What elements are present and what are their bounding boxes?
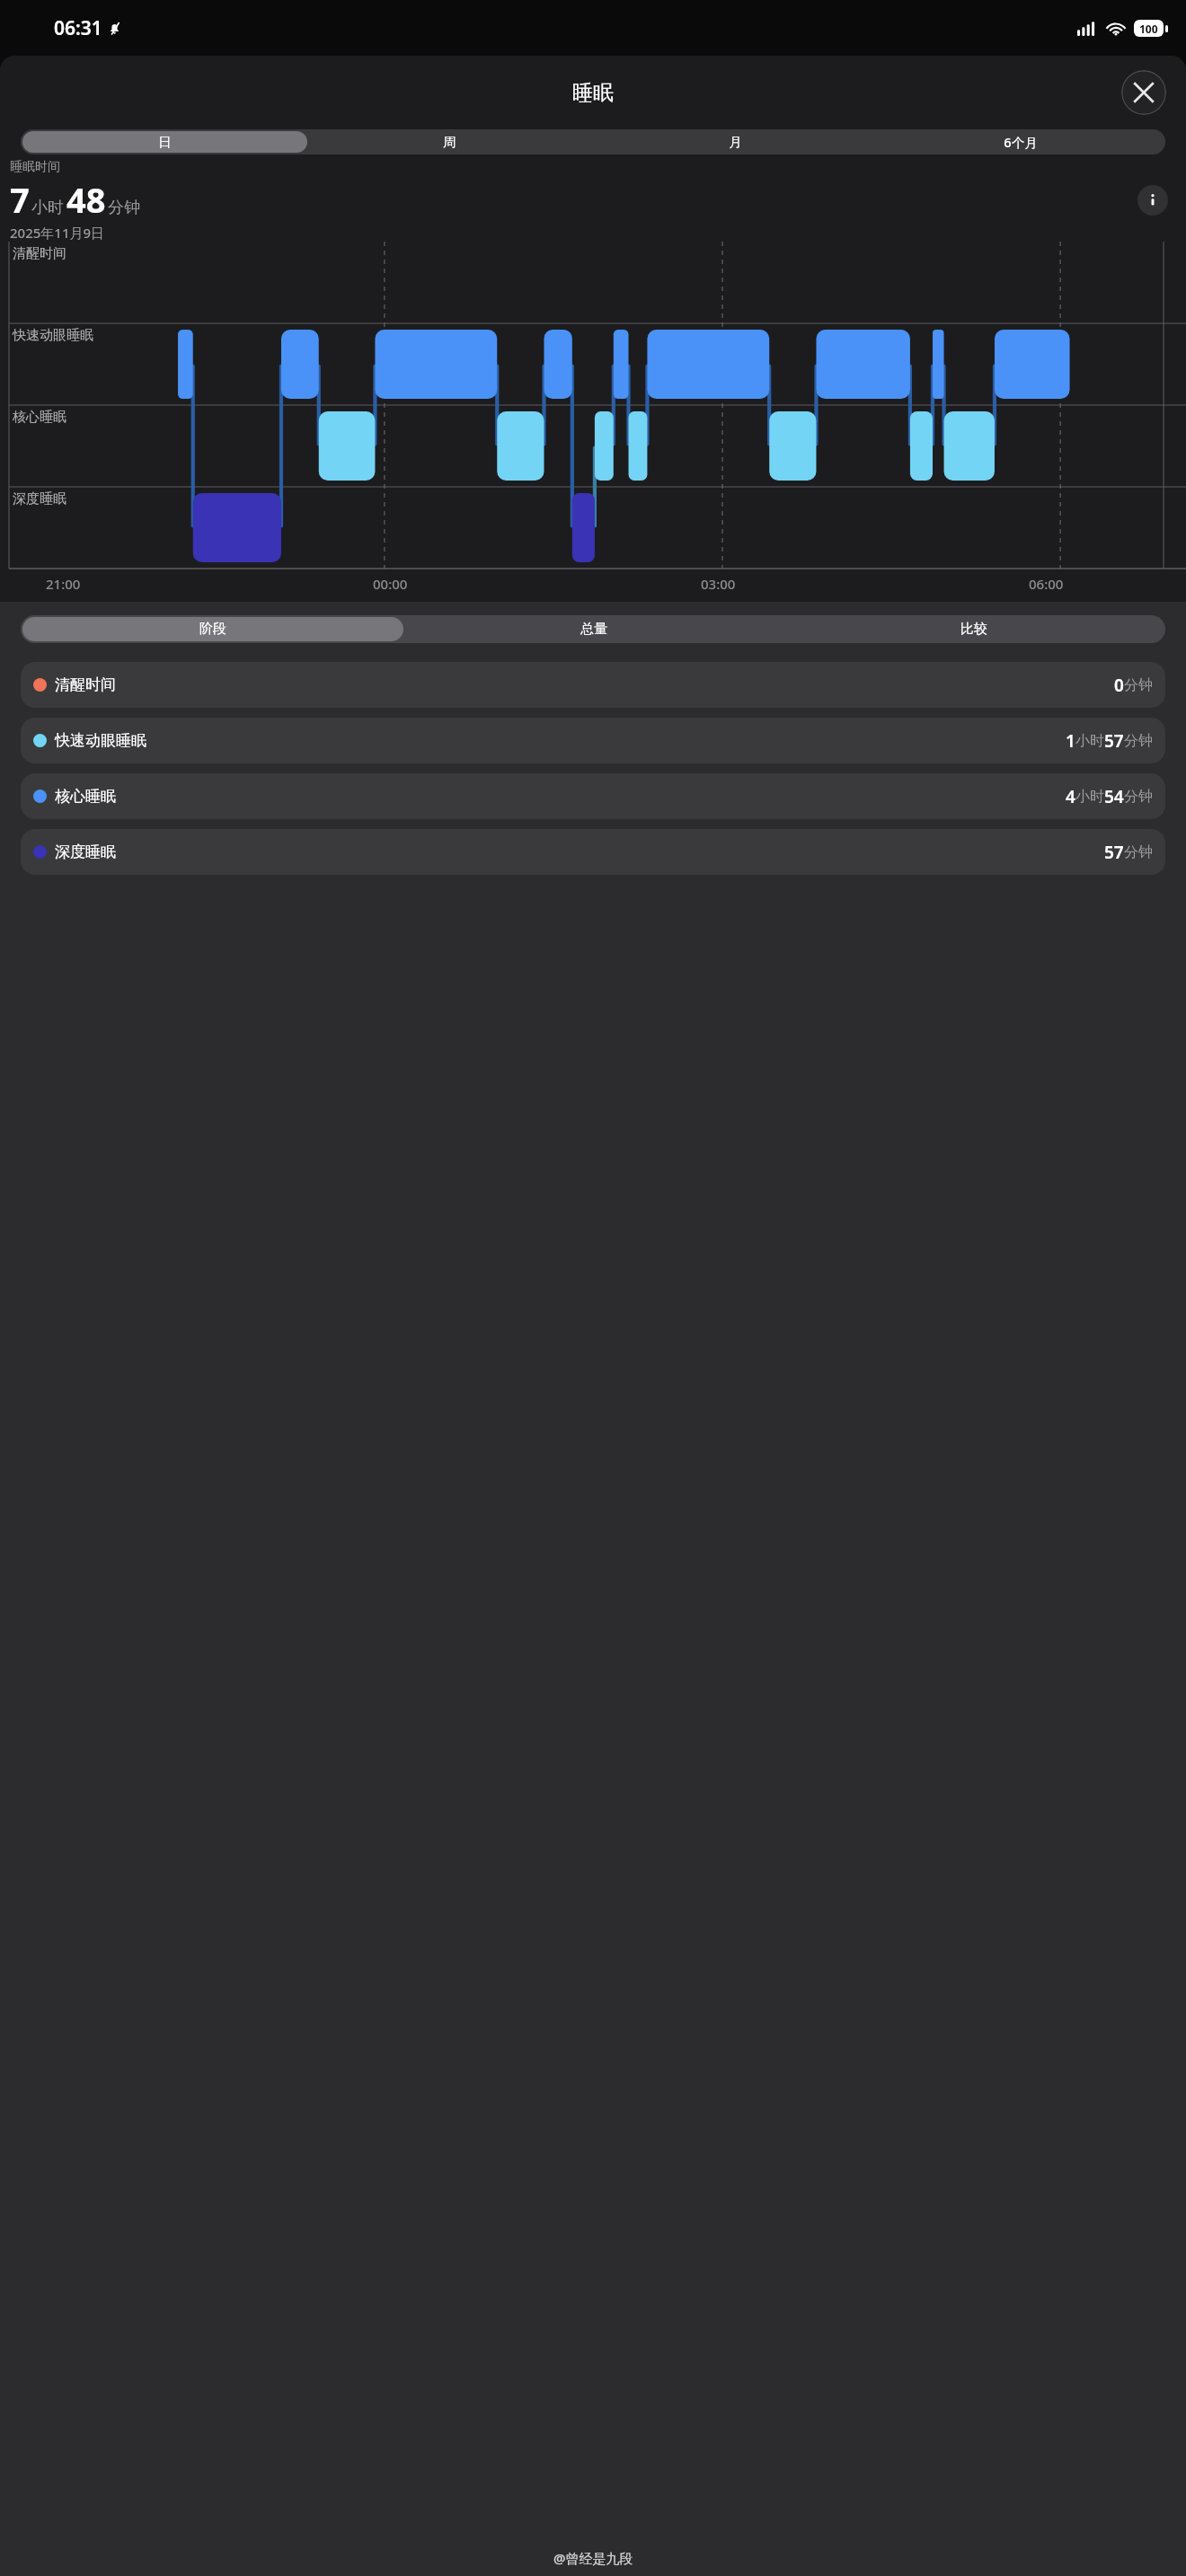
button[interactable]: 核心睡眠 [21,773,1165,819]
button[interactable]: 关闭 [1121,70,1166,115]
staticText: 清醒时间 [13,245,66,262]
staticText: 分钟 [108,198,140,218]
button[interactable]: 比较 [783,617,1164,641]
staticText: 6个月 [1004,133,1038,151]
staticText: 21:00 [46,575,81,593]
staticText: 快速动眼睡眠 [13,327,93,344]
staticText: 06:31 [54,15,102,41]
staticText: 阶段 [199,621,226,638]
staticText: 100 [1139,22,1158,36]
staticText: 周 [443,134,456,150]
staticText: 1 [1066,729,1075,753]
button[interactable]: 深度睡眠 [21,829,1165,875]
button[interactable]: 快速动眼睡眠 [21,718,1165,763]
staticText: 00:00 [373,575,408,593]
staticText: 4 [1066,785,1075,808]
staticText: 小时 [1075,788,1104,806]
staticText: 54 [1104,785,1124,808]
staticText: 月 [729,134,742,150]
staticText: 分钟 [1124,676,1153,694]
staticText: 57 [1104,841,1124,864]
staticText: 7 [10,176,30,223]
staticText: 深度睡眠 [55,842,116,861]
staticText: @曾经是九段 [553,2549,633,2567]
staticText: 核心睡眠 [13,409,66,426]
button[interactable]: 清醒时间 [21,662,1165,708]
staticText: 57 [1104,729,1124,753]
button[interactable]: 总量 [403,617,783,641]
staticText: 2025年11月9日 [10,224,105,242]
staticText: 日 [158,134,172,150]
button[interactable]: 周 [307,131,592,153]
staticText: 小时 [1075,732,1104,750]
button[interactable]: 日 [22,131,307,153]
staticText: 分钟 [1124,788,1153,806]
staticText: 总量 [580,621,607,638]
staticText: 睡眠时间 [10,159,60,175]
button[interactable]: 阶段 [22,617,403,641]
button[interactable]: 月 [592,131,878,153]
staticText: 核心睡眠 [55,787,116,806]
staticText: 分钟 [1124,732,1153,750]
staticText: 清醒时间 [55,675,116,694]
staticText: 小时 [31,198,64,218]
staticText: 03:00 [701,575,736,593]
staticText: 快速动眼睡眠 [55,731,146,750]
staticText: 06:00 [1029,575,1064,593]
button[interactable]: 6个月 [878,131,1164,153]
staticText: 48 [66,176,106,223]
staticText: 比较 [960,621,987,638]
staticText: 分钟 [1124,843,1153,861]
staticText: 0 [1114,674,1124,697]
staticText: 睡眠 [572,80,614,106]
staticText: 深度睡眠 [13,490,66,507]
button[interactable]: 信息 [1137,185,1168,216]
